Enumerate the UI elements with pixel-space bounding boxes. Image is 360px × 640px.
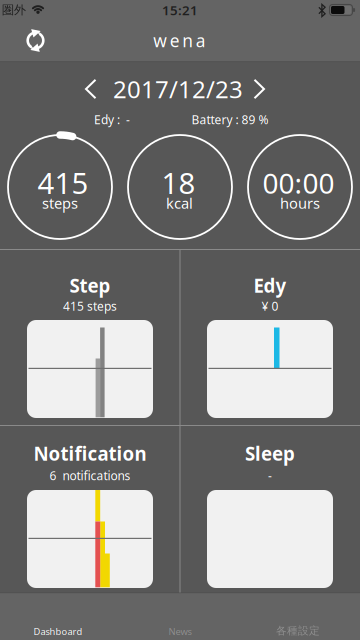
button[interactable]: Previous day (73, 71, 109, 107)
staticText: Dashboard (33, 625, 82, 638)
staticText: hours (280, 193, 320, 213)
staticText: News (168, 625, 191, 638)
staticText: 2017/12/23 (113, 73, 243, 105)
button[interactable]: Notification (0, 426, 180, 593)
staticText: Edy : - (94, 111, 130, 127)
staticText: Notification (33, 441, 146, 466)
button[interactable]: Sleep (180, 426, 360, 593)
staticText: Sleep (245, 441, 295, 466)
staticText: Edy (253, 273, 286, 298)
staticText: 6 notifications (49, 467, 130, 483)
staticText: 00:00 (262, 164, 334, 202)
staticText: wena (153, 29, 206, 52)
staticText: 15:21 (162, 1, 198, 19)
button[interactable]: News (120, 593, 240, 640)
staticText: 圏外 (2, 3, 26, 17)
staticText: steps (42, 193, 78, 213)
button[interactable]: Edy (180, 250, 360, 425)
button[interactable]: Step (0, 250, 180, 425)
staticText: Step (69, 273, 110, 298)
staticText: 415 (37, 163, 88, 202)
staticText: - (268, 467, 272, 483)
button[interactable]: 各種設定 (240, 593, 360, 640)
staticText: 415 steps (63, 298, 117, 314)
button[interactable]: Next day (241, 71, 277, 107)
button[interactable]: Dashboard (0, 593, 120, 640)
staticText: 18 (161, 163, 195, 202)
staticText: ¥ 0 (261, 298, 278, 314)
staticText: kcal (166, 193, 193, 213)
staticText: Battery : 89 % (191, 111, 268, 127)
staticText: 各種設定 (276, 624, 320, 637)
button[interactable]: Sync (13, 20, 57, 60)
